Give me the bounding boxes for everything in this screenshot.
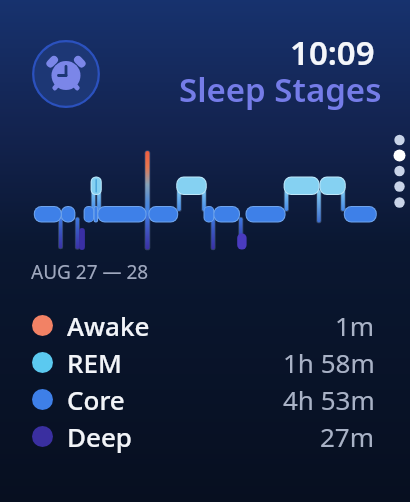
button[interactable]: Deep xyxy=(32,418,375,455)
staticText: 1m xyxy=(335,308,375,343)
button[interactable]: Awake xyxy=(32,307,375,344)
button[interactable] xyxy=(31,39,101,109)
staticText: 10:09 xyxy=(290,30,375,75)
staticText: REM xyxy=(67,345,122,380)
staticText: Awake xyxy=(67,308,150,343)
staticText: Core xyxy=(67,382,125,417)
staticText: 27m xyxy=(320,419,375,454)
staticText: AUG 27 — 28 xyxy=(31,259,149,285)
staticText: 4h 53m xyxy=(283,382,375,417)
staticText: Sleep Stages xyxy=(179,67,382,112)
staticText: 1h 58m xyxy=(283,345,375,380)
button[interactable]: REM xyxy=(32,344,375,381)
staticText: Deep xyxy=(67,419,132,454)
button[interactable]: Core xyxy=(32,381,375,418)
